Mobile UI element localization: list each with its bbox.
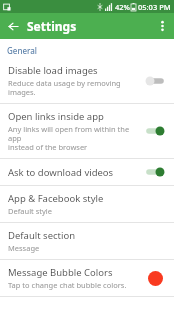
- staticText: Message Bubble Colors: [8, 266, 113, 279]
- button[interactable]: More options: [150, 14, 174, 38]
- staticText: Default section: [8, 229, 76, 242]
- staticText: Default style: [8, 206, 53, 216]
- staticText: Message: [8, 243, 40, 253]
- button[interactable]: Toggle on: [144, 124, 166, 138]
- button[interactable]: Default section: [0, 223, 174, 259]
- button[interactable]: Disable load images: [0, 58, 174, 103]
- staticText: 05:03 PM: [138, 2, 171, 12]
- staticText: Open links inside app: [8, 110, 104, 123]
- button[interactable]: Back: [0, 13, 26, 39]
- staticText: Any links will open from within the app …: [8, 124, 138, 152]
- staticText: Ask to download videos: [8, 166, 114, 179]
- button[interactable]: Toggle off: [144, 74, 166, 88]
- staticText: General: [7, 45, 37, 56]
- button[interactable]: Ask to download videos: [0, 159, 174, 185]
- staticText: Reduce data usage by removing images.: [8, 78, 138, 97]
- button[interactable]: Message Bubble Colors: [0, 260, 174, 296]
- staticText: 42%: [115, 2, 130, 12]
- staticText: Tap to change chat bubble colors.: [8, 280, 127, 290]
- staticText: Settings: [27, 18, 77, 34]
- button[interactable]: Toggle on: [144, 165, 166, 179]
- button[interactable]: Open links inside app: [0, 104, 174, 158]
- button[interactable]: Message bubble color: [148, 271, 163, 286]
- staticText: App & Facebook style: [8, 192, 104, 205]
- staticText: Disable load images: [8, 64, 98, 77]
- button[interactable]: App & Facebook style: [0, 186, 174, 222]
